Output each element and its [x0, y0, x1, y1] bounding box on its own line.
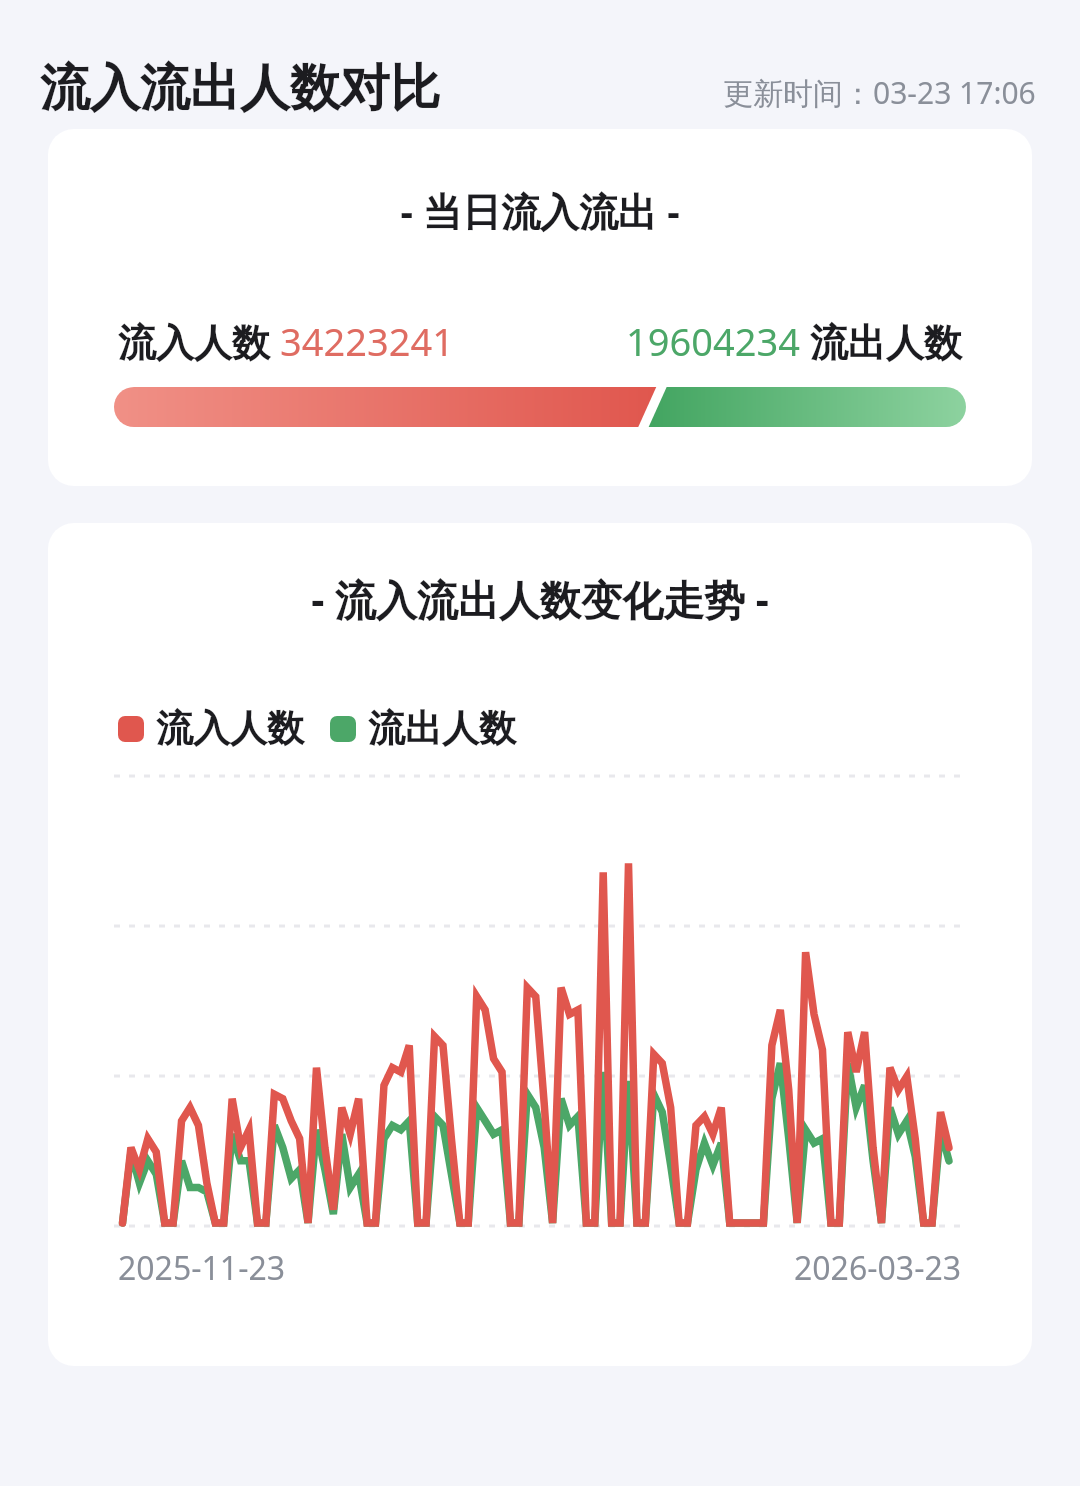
button[interactable]: 流入人数 — [118, 705, 304, 752]
staticText: 2025-11-23 — [118, 1246, 286, 1290]
staticText: 流入流出人数对比 — [40, 57, 440, 120]
other: 流入流出人数变化走势折线图 — [114, 776, 966, 1226]
button[interactable]: 流出人数 — [330, 705, 516, 752]
staticText: 流出人数 — [368, 705, 516, 752]
staticText: 流入人数 — [118, 315, 280, 367]
staticText: 流出人数 — [800, 315, 962, 367]
staticText: 更新时间：03-23 17:06 — [723, 72, 1036, 113]
staticText: 流入人数 — [156, 705, 304, 752]
staticText: 34223241 — [280, 315, 454, 367]
staticText: 2026-03-23 — [794, 1246, 962, 1290]
button[interactable]: - 流入流出人数变化走势 - — [48, 523, 1032, 1366]
staticText: - 当日流入流出 - — [48, 184, 1032, 237]
button[interactable]: - 当日流入流出 - — [48, 129, 1032, 486]
staticText: - 流入流出人数变化走势 - — [48, 571, 1032, 627]
staticText: 19604234 — [626, 315, 800, 367]
